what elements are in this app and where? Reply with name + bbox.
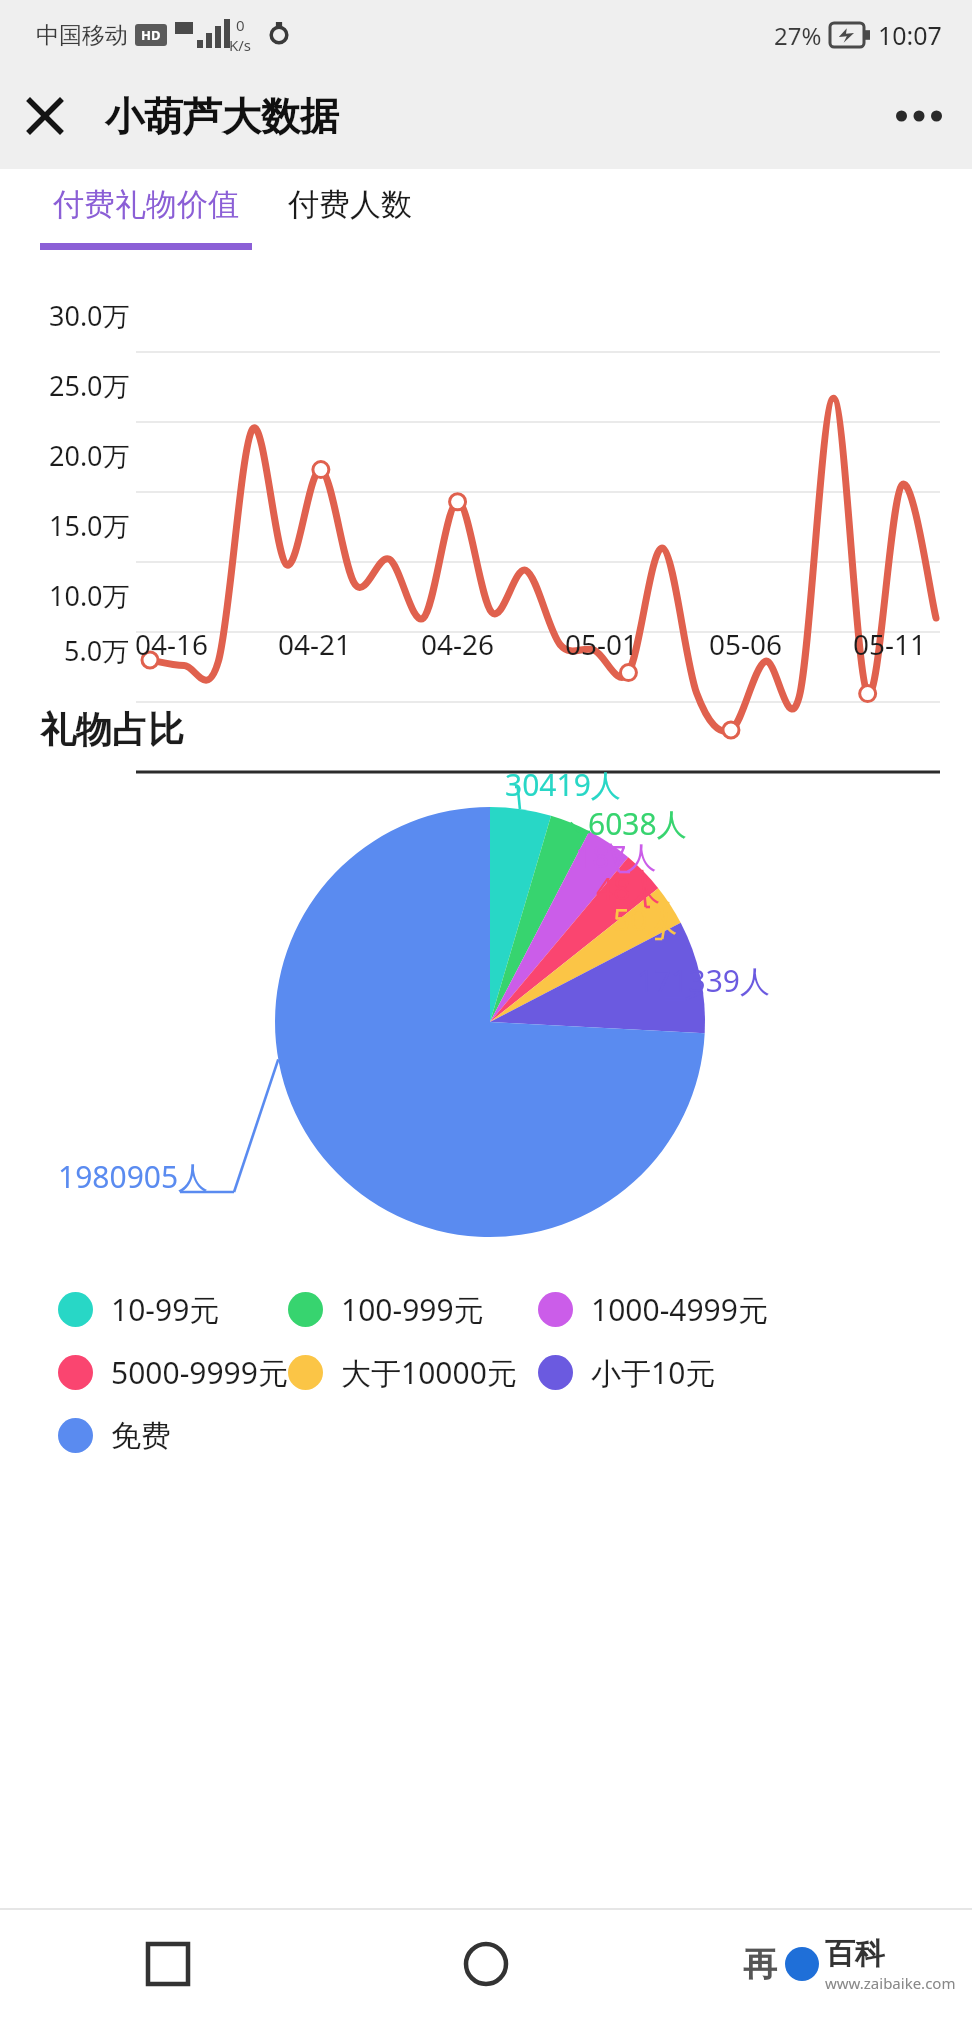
staticText: 27% [774, 19, 822, 52]
staticText: 05-01 [565, 625, 639, 663]
staticText: 05-11 [853, 625, 927, 663]
staticText: 再 [743, 1943, 777, 1986]
staticText: 1000-4999元 [591, 1289, 768, 1330]
staticText: 171339人 [637, 960, 770, 1001]
staticText: 25.0万 [49, 367, 130, 404]
button[interactable]: 5000-9999元 [58, 1341, 288, 1404]
button[interactable]: Recent apps [120, 1916, 216, 2012]
button[interactable]: 1000-4999元 [538, 1278, 788, 1341]
staticText: 5.0万 [64, 632, 130, 669]
staticText: 05-06 [709, 625, 783, 663]
staticText: 免费 [111, 1417, 171, 1455]
staticText: 10-99元 [111, 1289, 220, 1330]
staticText: 6038人 [588, 803, 687, 844]
staticText: 10.0万 [49, 577, 130, 614]
button[interactable]: 付费人数 [288, 185, 412, 224]
button[interactable]: Back [756, 1916, 852, 2012]
staticText: 10:07 [878, 18, 942, 52]
staticText: 1980905人 [58, 1156, 209, 1197]
staticText: 付费礼物价值 [53, 185, 239, 224]
button[interactable]: 100-999元 [288, 1278, 538, 1341]
button[interactable]: 10-99元 [58, 1278, 288, 1341]
staticText: 04-16 [135, 625, 209, 663]
staticText: K/s [229, 35, 252, 55]
staticText: 100-999元 [341, 1289, 484, 1330]
staticText: HD [141, 26, 161, 44]
staticText: 大于10000元 [341, 1352, 517, 1393]
staticText: 0 [236, 15, 245, 35]
staticText: 小于10元 [591, 1352, 716, 1393]
button[interactable]: Home [438, 1916, 534, 2012]
staticText: 50人 [613, 899, 678, 940]
staticText: 中国移动 [36, 21, 128, 50]
staticText: 15.0万 [49, 507, 130, 544]
button[interactable]: More options [886, 83, 952, 149]
button[interactable]: 免费 [58, 1404, 288, 1467]
staticText: 礼物占比 [40, 707, 184, 752]
staticText: 5000-9999元 [111, 1352, 288, 1393]
staticText: 30419人 [505, 764, 621, 805]
staticText: 30.0万 [49, 297, 130, 334]
button[interactable]: 付费礼物价值 [40, 185, 252, 250]
staticText: 小葫芦大数据 [105, 92, 339, 141]
staticText: 04-26 [421, 625, 495, 663]
button[interactable]: Close [14, 85, 76, 147]
staticText: 48人 [596, 868, 661, 909]
staticText: 付费人数 [288, 185, 412, 224]
staticText: 04-21 [278, 625, 352, 663]
staticText: 187人 [575, 836, 657, 877]
button[interactable]: 大于10000元 [288, 1341, 538, 1404]
staticText: 百科 [825, 1935, 885, 1973]
staticText: www.zaibaike.com [825, 1973, 956, 1993]
button[interactable]: 小于10元 [538, 1341, 788, 1404]
staticText: 20.0万 [49, 437, 130, 474]
